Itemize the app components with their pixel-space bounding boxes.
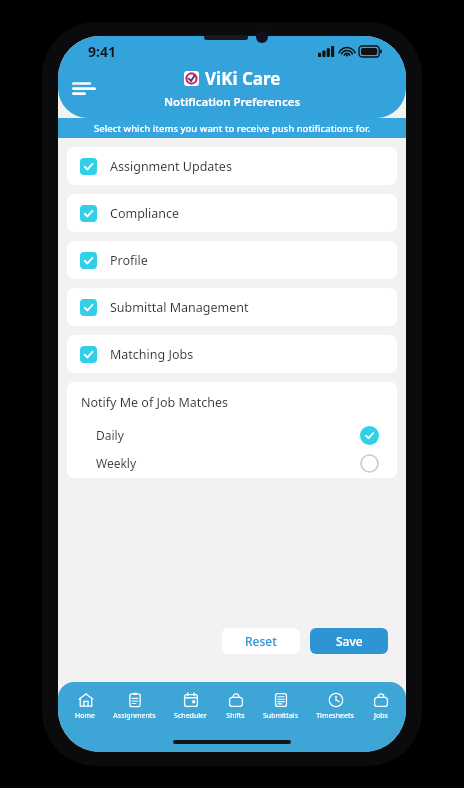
button[interactable]: Daily (67, 421, 397, 449)
button[interactable]: Matching Jobs (67, 335, 397, 373)
staticText: Reset (245, 633, 277, 649)
staticText: Select which items you want to receive p… (94, 122, 370, 135)
button[interactable]: Submittal Management (67, 288, 397, 326)
staticText: Notification Preferences (164, 94, 301, 110)
button[interactable]: Reset (222, 628, 300, 654)
button[interactable]: Save (310, 628, 388, 654)
staticText: ViKi Care (205, 67, 281, 90)
button[interactable]: Compliance (67, 194, 397, 232)
staticText: Notify Me of Job Matches (81, 394, 229, 411)
staticText: Shifts (226, 711, 245, 721)
staticText: Timesheets (316, 711, 354, 721)
button[interactable]: Submittals (262, 691, 299, 721)
staticText: Assignment Updates (110, 158, 232, 175)
button[interactable]: Home (74, 691, 96, 721)
staticText: Daily (96, 427, 124, 443)
staticText: Compliance (110, 205, 180, 222)
staticText: Save (336, 633, 363, 649)
staticText: Jobs (374, 711, 388, 721)
staticText: Submittals (263, 711, 298, 721)
button[interactable]: Timesheets (315, 691, 355, 721)
staticText: Home (75, 711, 95, 721)
button[interactable]: Scheduler (173, 691, 208, 721)
staticText: Scheduler (174, 711, 207, 721)
staticText: Assignments (113, 711, 156, 721)
staticText: Matching Jobs (110, 346, 194, 363)
button[interactable]: Shifts (225, 691, 246, 721)
button[interactable]: Menu (62, 66, 106, 110)
button[interactable]: Profile (67, 241, 397, 279)
staticText: Profile (110, 252, 148, 269)
button[interactable]: Jobs (371, 691, 390, 721)
button[interactable]: Weekly (67, 449, 397, 477)
button[interactable]: Assignments (112, 691, 157, 721)
staticText: Submittal Management (110, 299, 249, 316)
staticText: Weekly (96, 455, 137, 471)
staticText: 9:41 (88, 42, 116, 61)
button[interactable]: Assignment Updates (67, 147, 397, 185)
